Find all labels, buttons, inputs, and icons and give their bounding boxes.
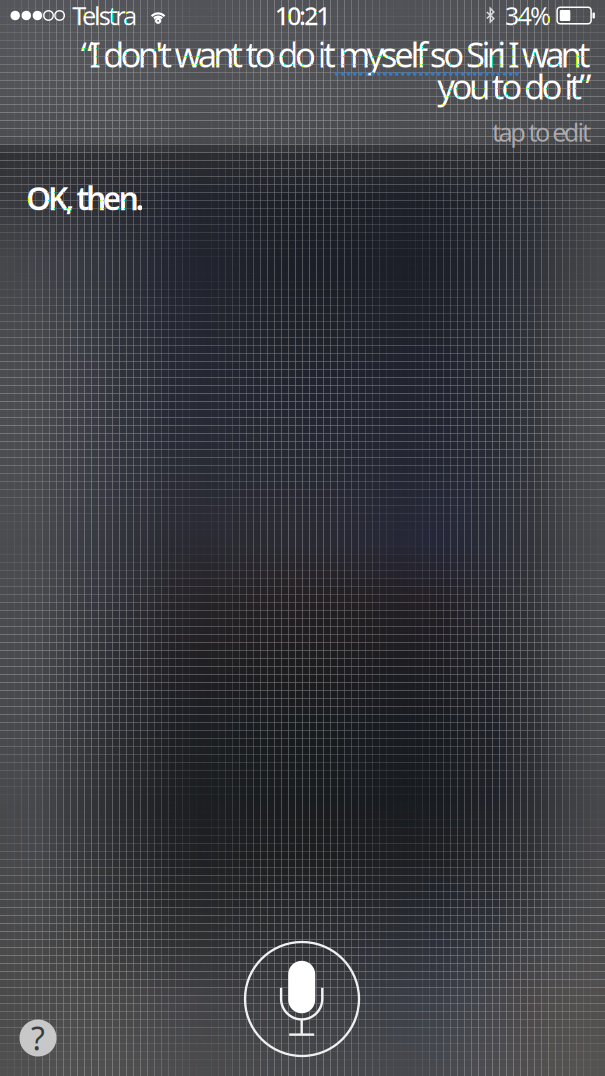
button[interactable]: Microphone, tap to speak [240, 937, 364, 1061]
button[interactable]: “I don't want to do it myself so Siri I … [0, 41, 605, 149]
staticText: “I don't want to do it myself so Siri I … [81, 31, 591, 77]
staticText: 10:21 [275, 0, 330, 32]
staticText: 34% [505, 0, 551, 32]
staticText: Telstra [72, 0, 137, 32]
staticText: OK, then. [26, 177, 144, 219]
staticText: tap to edit [492, 115, 591, 149]
staticText: ? [31, 1017, 45, 1059]
button[interactable]: Siri help [15, 1015, 61, 1061]
staticText: you to do it” [437, 63, 591, 109]
